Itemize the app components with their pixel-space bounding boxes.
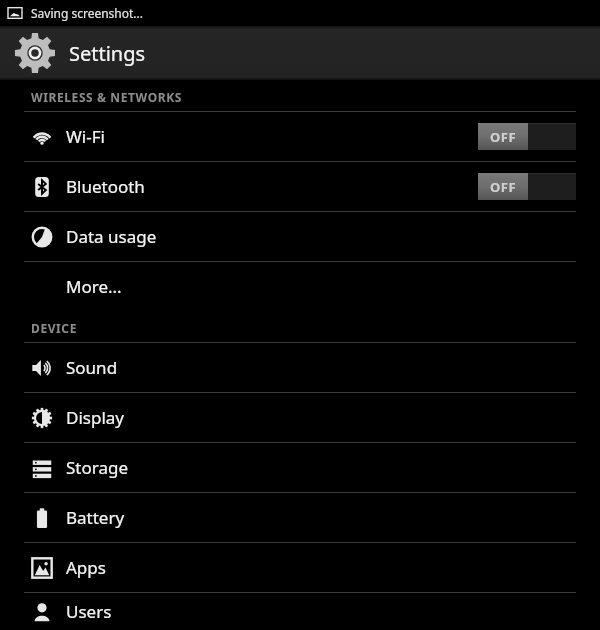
staticText: Sound xyxy=(66,356,118,379)
button[interactable]: Users xyxy=(0,593,600,630)
other: Display xyxy=(31,407,53,429)
button[interactable]: More... xyxy=(0,262,600,311)
staticText: Bluetooth xyxy=(66,175,145,198)
button[interactable]: Sound xyxy=(0,343,600,392)
other: Data usage xyxy=(31,226,53,248)
staticText: Apps xyxy=(66,556,106,579)
other: Battery xyxy=(31,507,53,529)
button[interactable]: Bluetooth xyxy=(0,162,600,211)
staticText: Wi-Fi xyxy=(66,125,105,148)
button[interactable]: Toggle off xyxy=(478,122,576,151)
staticText: Battery xyxy=(66,506,125,529)
staticText: More... xyxy=(66,275,122,298)
other: Sound xyxy=(31,357,53,379)
staticText: OFF xyxy=(490,128,517,146)
button[interactable]: Storage xyxy=(0,443,600,492)
button[interactable]: Wi-Fi xyxy=(0,112,600,161)
other: Storage xyxy=(31,457,53,479)
staticText: Storage xyxy=(66,456,129,479)
staticText: OFF xyxy=(490,178,517,196)
other: Bluetooth xyxy=(31,176,53,198)
button[interactable]: Apps xyxy=(0,543,600,592)
staticText: Display xyxy=(66,406,124,429)
button[interactable]: Data usage xyxy=(0,212,600,261)
staticText: Saving screenshot... xyxy=(31,5,144,21)
staticText: Users xyxy=(66,600,112,623)
button[interactable]: Display xyxy=(0,393,600,442)
button[interactable]: Battery xyxy=(0,493,600,542)
other: Apps xyxy=(31,557,53,579)
other: Users xyxy=(31,601,53,623)
staticText: Settings xyxy=(69,40,146,67)
staticText: WIRELESS & NETWORKS xyxy=(31,89,182,105)
staticText: DEVICE xyxy=(31,320,77,336)
staticText: Data usage xyxy=(66,225,157,248)
other: Wi-Fi xyxy=(31,126,53,148)
button[interactable]: Toggle off xyxy=(478,172,576,201)
